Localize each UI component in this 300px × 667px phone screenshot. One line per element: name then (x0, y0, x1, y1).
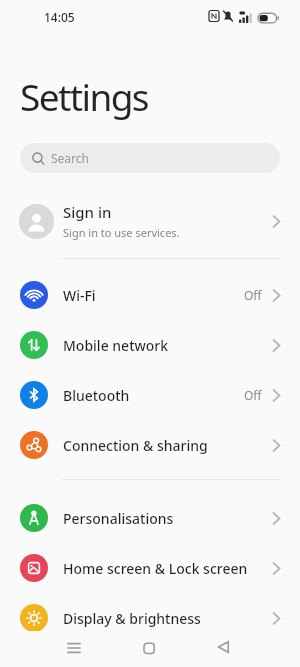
staticText: Home screen & Lock screen (63, 559, 248, 578)
staticText: Personalisations (63, 509, 174, 528)
button[interactable]: Display & brightness (0, 593, 300, 643)
staticText: Display & brightness (63, 609, 201, 628)
button[interactable]: Home screen & Lock screen (0, 543, 300, 593)
staticText: 14:05 (44, 9, 75, 25)
staticText: Sign in to use services. (63, 225, 180, 240)
staticText: Mobile network (63, 336, 169, 355)
button[interactable]: Search (20, 143, 280, 173)
button[interactable]: Wi-Fi (0, 270, 300, 320)
staticText: Connection & sharing (63, 436, 208, 455)
button[interactable] (200, 631, 300, 667)
button[interactable] (100, 631, 200, 667)
staticText: Bluetooth (63, 386, 130, 405)
staticText: Off (244, 287, 262, 303)
button[interactable] (0, 631, 100, 667)
staticText: Sign in (63, 202, 112, 222)
button[interactable]: Sign in (0, 196, 300, 246)
button[interactable]: Mobile network (0, 320, 300, 370)
staticText: Search (51, 150, 89, 166)
staticText: Settings (20, 71, 148, 121)
staticText: Wi-Fi (63, 286, 96, 305)
staticText: Off (244, 387, 262, 403)
button[interactable]: Bluetooth (0, 370, 300, 420)
button[interactable]: Connection & sharing (0, 420, 300, 470)
button[interactable]: Personalisations (0, 493, 300, 543)
